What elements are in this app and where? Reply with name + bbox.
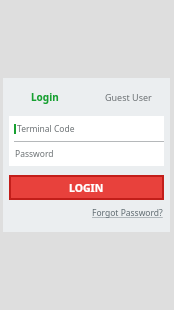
- button[interactable]: Password: [9, 142, 164, 166]
- staticText: Terminal Code: [17, 123, 75, 135]
- button[interactable]: Forgot Password?: [92, 207, 163, 219]
- staticText: Login: [31, 90, 59, 104]
- staticText: Password: [15, 148, 54, 160]
- staticText: LOGIN: [69, 181, 104, 195]
- button[interactable]: Guest User: [86, 78, 170, 116]
- button[interactable]: LOGIN: [9, 175, 164, 200]
- staticText: Forgot Password?: [92, 207, 163, 219]
- button[interactable]: Login: [3, 78, 86, 116]
- button[interactable]: Terminal Code: [9, 116, 164, 141]
- staticText: Guest User: [105, 91, 152, 103]
